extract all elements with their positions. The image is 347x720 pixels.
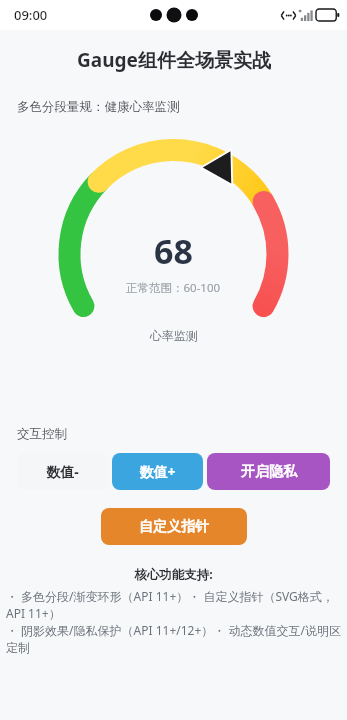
staticText: 核心功能支持: — [134, 566, 213, 583]
staticText: 68 — [154, 228, 193, 274]
staticText: 心率监测 — [150, 328, 198, 343]
staticText: 交互控制 — [17, 426, 67, 442]
button[interactable]: 数值- — [17, 453, 108, 490]
staticText: ・ 阴影效果/隐私保护（API 11+/12+）・ 动态数值交互/说明区定制 — [6, 622, 341, 655]
button[interactable]: 自定义指针 — [101, 508, 247, 545]
staticText: 数值+ — [139, 462, 176, 481]
staticText: 数值- — [46, 462, 79, 481]
staticText: Gauge组件全场景实战 — [77, 47, 271, 73]
staticText: 09:00 — [14, 6, 48, 24]
staticText: 正常范围：60-100 — [126, 280, 221, 296]
staticText: 开启隐私 — [241, 463, 297, 481]
button[interactable]: 数值+ — [112, 453, 203, 490]
staticText: 多色分段量规：健康心率监测 — [17, 99, 180, 115]
staticText: 自定义指针 — [139, 518, 209, 536]
staticText: ・ 多色分段/渐变环形（API 11+）・ 自定义指针（SVG格式，API 11… — [6, 588, 341, 622]
button[interactable]: 开启隐私 — [207, 453, 330, 490]
